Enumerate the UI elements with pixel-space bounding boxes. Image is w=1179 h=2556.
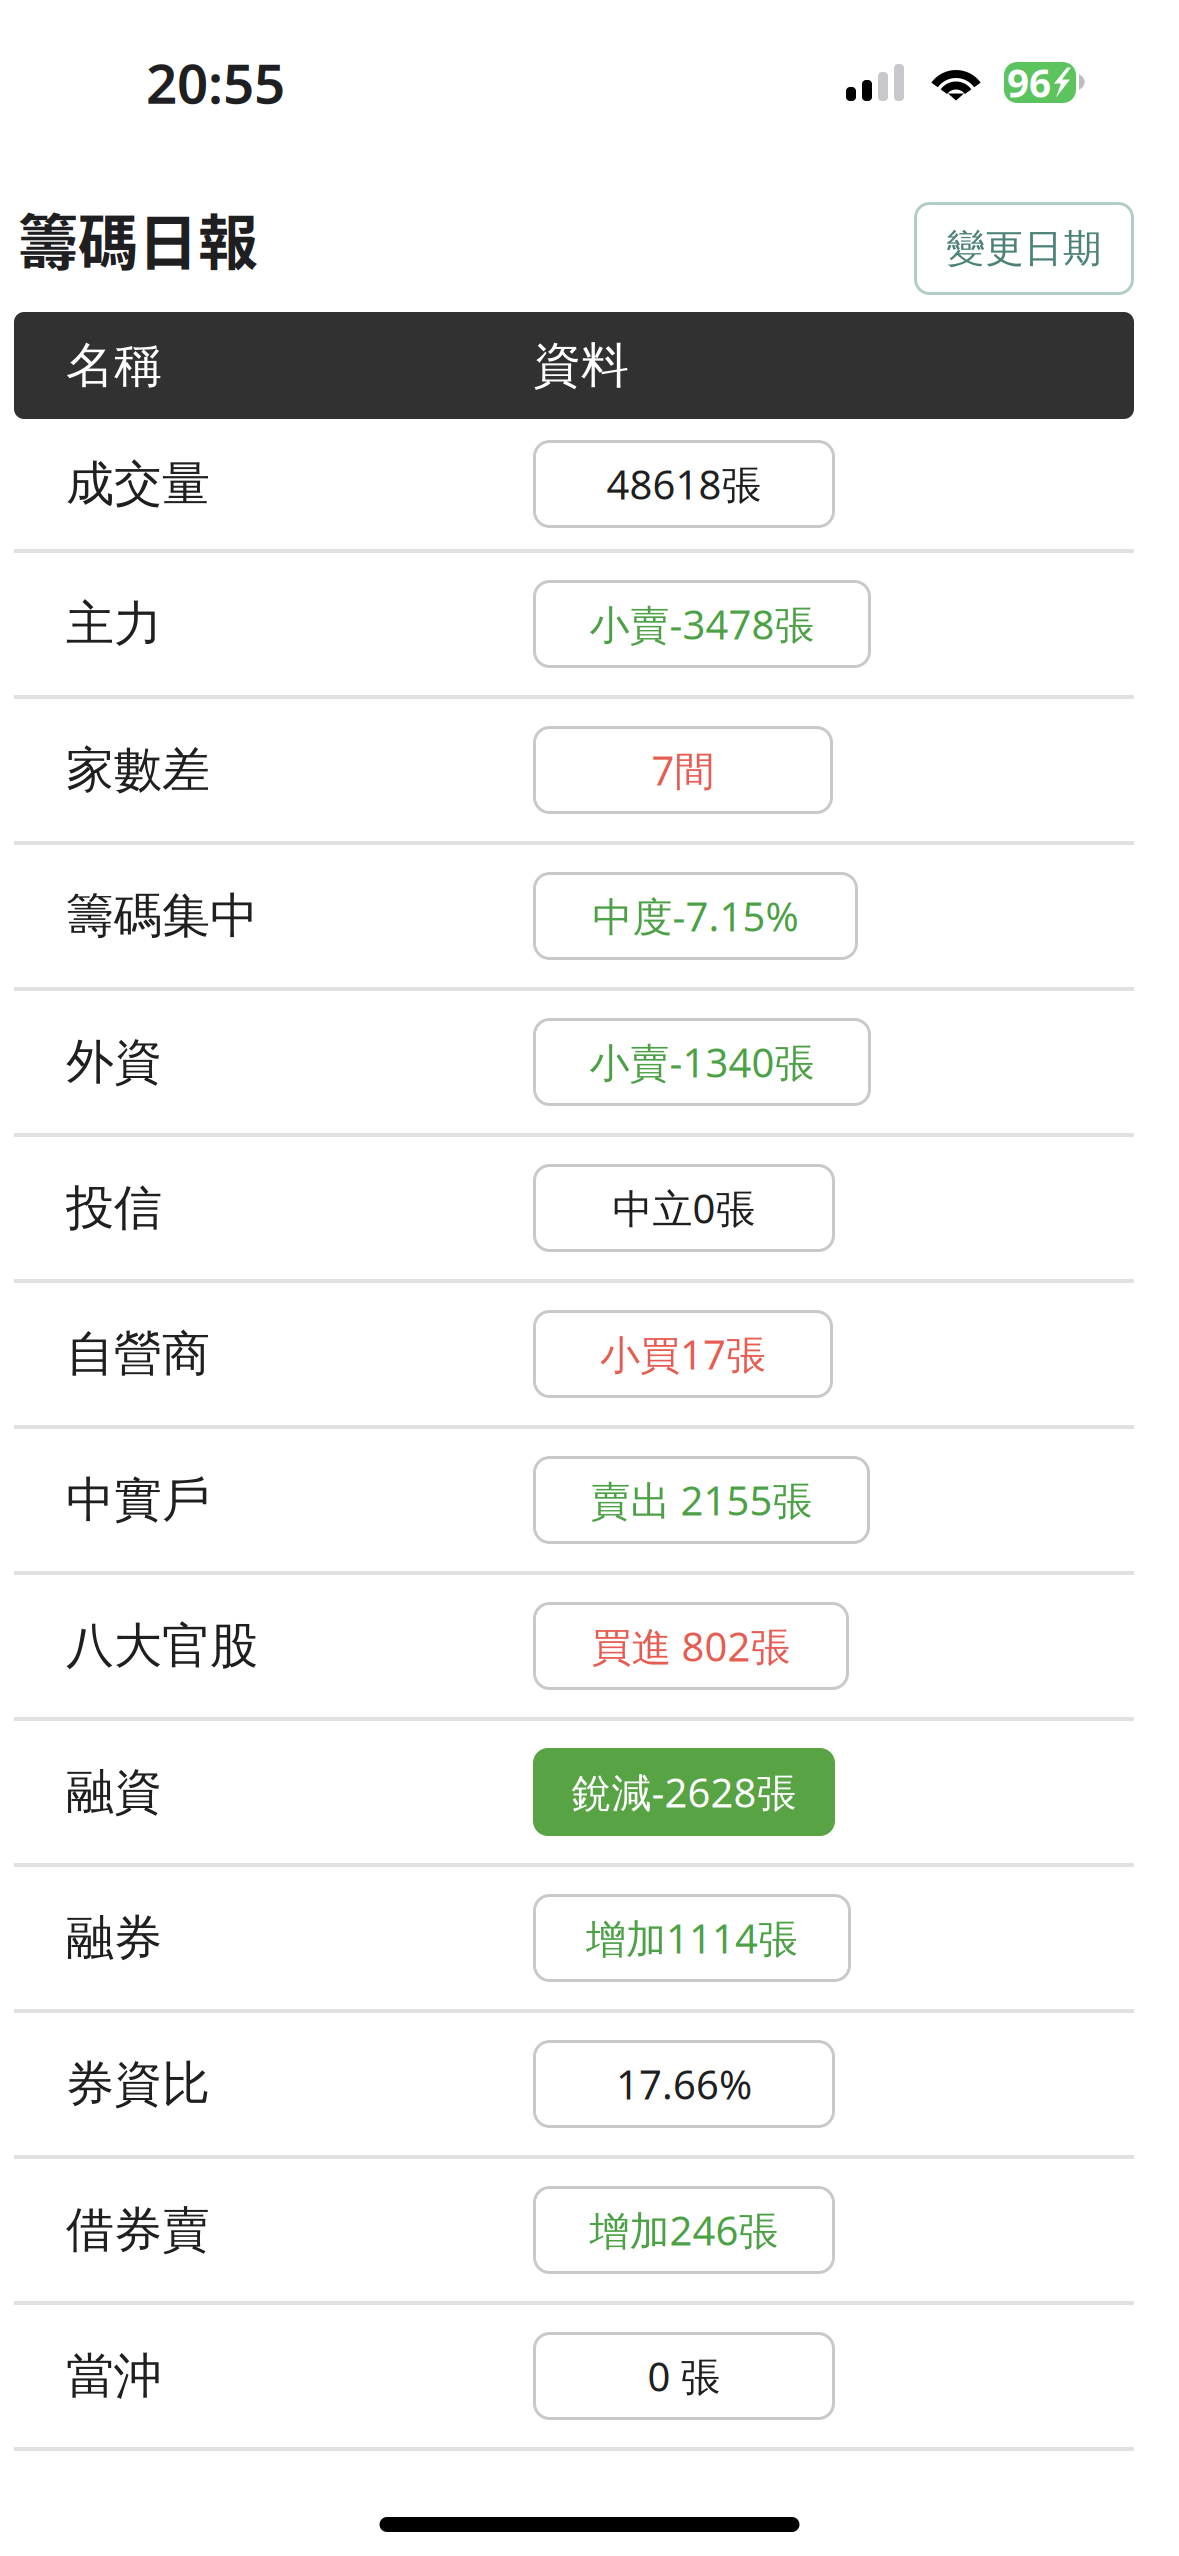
button[interactable]: 自營商 — [14, 1283, 1134, 1425]
button[interactable]: 借券賣 — [14, 2159, 1134, 2301]
button[interactable]: 主力 — [14, 553, 1134, 695]
button[interactable]: 八大官股 — [14, 1575, 1134, 1717]
staticText: 小賣-3478張 — [589, 597, 814, 650]
staticText: 17.66% — [616, 2057, 752, 2110]
button[interactable]: 籌碼集中 — [14, 845, 1134, 987]
button[interactable]: 當沖 — [14, 2305, 1134, 2447]
staticText: 自營商 — [66, 1324, 210, 1383]
button[interactable]: 融資 — [14, 1721, 1134, 1863]
staticText: 融券 — [66, 1908, 162, 1967]
staticText: 中實戶 — [66, 1470, 210, 1529]
staticText: 當沖 — [66, 2346, 162, 2405]
button[interactable]: 家數差 — [14, 699, 1134, 841]
staticText: 籌碼集中 — [66, 886, 258, 945]
staticText: 融資 — [66, 1762, 162, 1821]
staticText: 投信 — [66, 1178, 162, 1237]
staticText: 中立0張 — [612, 1181, 755, 1234]
button[interactable]: 投信 — [14, 1137, 1134, 1279]
button[interactable]: 外資 — [14, 991, 1134, 1133]
staticText: 籌碼日報 — [18, 195, 258, 282]
button[interactable]: 融券 — [14, 1867, 1134, 2009]
button[interactable]: 成交量 — [14, 419, 1134, 549]
staticText: 20:55 — [146, 46, 285, 119]
staticText: 家數差 — [66, 740, 210, 799]
staticText: 小賣-1340張 — [589, 1035, 814, 1088]
staticText: 增加1114張 — [586, 1911, 798, 1964]
button[interactable]: 券資比 — [14, 2013, 1134, 2155]
staticText: 48618張 — [606, 457, 761, 510]
staticText: 增加246張 — [589, 2203, 778, 2256]
staticText: 銳減-2628張 — [571, 1765, 796, 1818]
staticText: 主力 — [66, 594, 162, 653]
staticText: 中度-7.15% — [592, 889, 798, 942]
staticText: 賣出 2155張 — [590, 1473, 812, 1526]
staticText: 變更日期 — [946, 225, 1102, 272]
staticText: 名稱 — [66, 336, 162, 395]
staticText: 7間 — [651, 743, 714, 796]
button[interactable]: 中實戶 — [14, 1429, 1134, 1571]
staticText: 0 張 — [647, 2349, 720, 2402]
button[interactable]: 變更日期 — [914, 202, 1134, 295]
staticText: 借券賣 — [66, 2200, 210, 2259]
staticText: 96 — [1007, 57, 1051, 108]
staticText: 外資 — [66, 1032, 162, 1091]
staticText: 小買17張 — [600, 1327, 766, 1380]
staticText: 券資比 — [66, 2054, 210, 2113]
staticText: 八大官股 — [66, 1616, 258, 1675]
staticText: 資料 — [533, 336, 629, 395]
staticText: 買進 802張 — [591, 1619, 790, 1672]
staticText: 成交量 — [66, 454, 210, 513]
